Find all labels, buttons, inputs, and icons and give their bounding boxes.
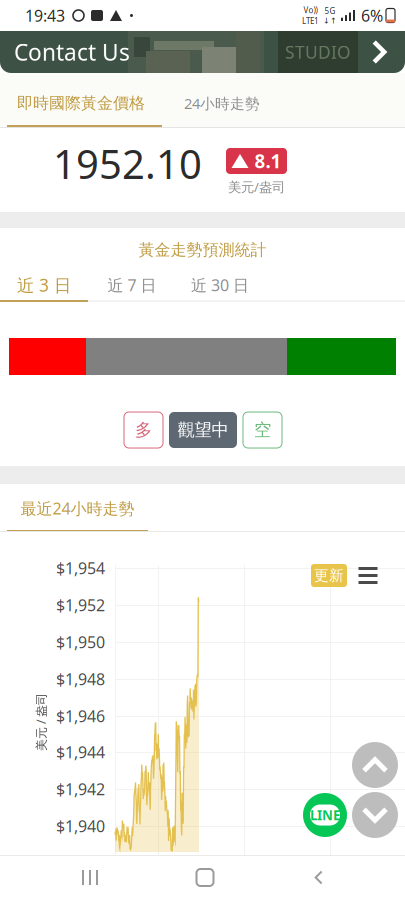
staticText: $1,952 [56, 594, 105, 616]
button[interactable]: 觀望中 [169, 412, 237, 448]
button[interactable]: LINE [303, 793, 347, 837]
staticText: Vo)) [303, 5, 317, 15]
staticText: 觀望中 [177, 419, 228, 441]
button[interactable]: STUDIO [0, 31, 405, 73]
staticText: 8.1 [254, 149, 281, 173]
staticText: LTE1 [302, 15, 319, 26]
button[interactable]: 多 [124, 412, 163, 448]
button[interactable]: 即時國際黃金價格 [7, 73, 162, 127]
staticText: $1,954 [56, 557, 105, 579]
staticText: 黃金走勢預測統計 [138, 240, 266, 260]
button[interactable]: Home [156, 855, 254, 900]
button[interactable]: Back [254, 855, 383, 900]
staticText: 美元/盎司 [228, 178, 285, 196]
staticText: $1,942 [56, 778, 105, 800]
button[interactable]: 空 [243, 412, 282, 448]
staticText: 空 [254, 419, 271, 441]
button[interactable]: 近 3 日 [0, 270, 88, 300]
staticText: LINE [310, 806, 340, 824]
staticText: 24小時走勢 [184, 93, 260, 113]
staticText: 1952.10 [53, 137, 202, 190]
button[interactable]: Scroll to bottom [352, 792, 398, 838]
staticText: Contact Us [14, 37, 130, 67]
staticText: 近 7 日 [107, 274, 156, 296]
staticText: $1,950 [56, 631, 105, 653]
staticText: 近 30 日 [191, 274, 249, 296]
staticText: $1,940 [56, 815, 105, 837]
staticText: $1,944 [56, 741, 105, 763]
staticText: 多 [135, 419, 152, 441]
staticText: STUDIO [285, 40, 351, 63]
staticText: 美元 / 盎司 [12, 714, 70, 730]
staticText: 近 3 日 [17, 273, 71, 296]
staticText: 更新 [314, 566, 344, 584]
button[interactable]: 近 7 日 [88, 270, 176, 300]
staticText: 即時國際黃金價格 [17, 93, 145, 113]
staticText: $1,948 [56, 668, 105, 690]
button[interactable]: Recents [24, 855, 156, 900]
button[interactable]: 最近24小時走勢 [7, 484, 148, 532]
button[interactable]: 近 30 日 [176, 270, 264, 300]
button[interactable]: Chart menu [357, 564, 379, 587]
button[interactable]: Scroll to top [352, 742, 398, 788]
button[interactable]: 更新 [311, 564, 347, 587]
staticText: 5G [324, 6, 335, 16]
staticText: ↓↑ [323, 16, 337, 25]
staticText: $1,946 [56, 705, 105, 727]
button[interactable]: 24小時走勢 [162, 73, 282, 127]
staticText: 6% [361, 5, 383, 26]
staticText: 19:43 [25, 5, 65, 26]
staticText: 最近24小時走勢 [20, 498, 134, 519]
